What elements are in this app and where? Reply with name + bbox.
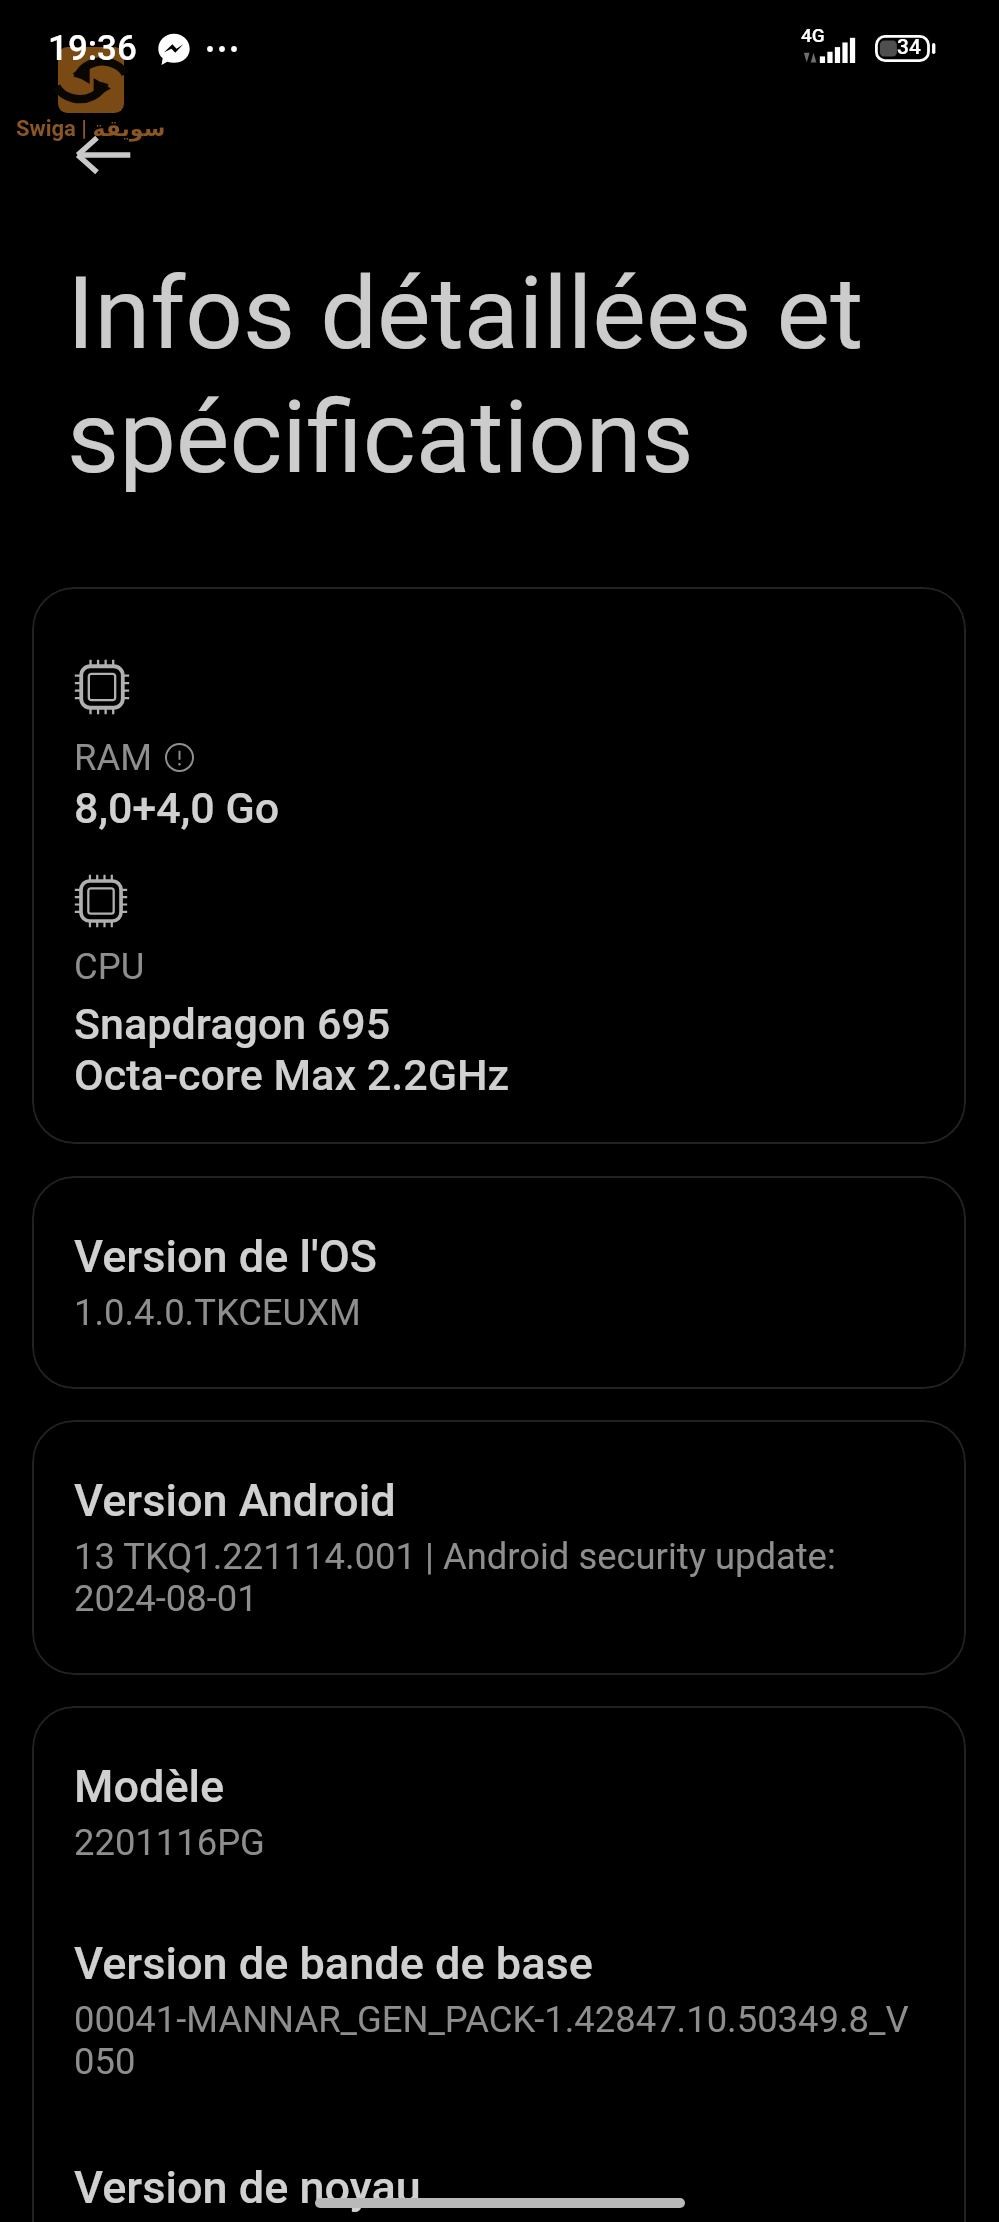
other: 4G signal strength <box>803 33 860 63</box>
staticText: CPU <box>74 945 145 988</box>
button[interactable]: Messenger notification <box>158 33 190 65</box>
staticText: Version de l'OS <box>74 1230 377 1283</box>
staticText: Version de noyau <box>74 2161 421 2214</box>
button[interactable]: Back <box>62 124 146 186</box>
staticText: 2201116PG <box>74 1821 265 1864</box>
staticText: Swiga | سويقة <box>16 116 166 142</box>
staticText: 8,0+4,0 Go <box>74 783 280 833</box>
staticText: Modèle <box>74 1760 225 1813</box>
staticText: RAM <box>74 736 152 779</box>
staticText: 00041-MANNAR_GEN_PACK-1.42847.10.50349.8… <box>74 1998 909 2083</box>
staticText: 4G <box>801 24 825 46</box>
button[interactable]: More notifications <box>207 33 237 65</box>
button[interactable]: Version Android <box>32 1420 966 1675</box>
staticText: 1.0.4.0.TKCEUXM <box>74 1291 361 1334</box>
staticText: 34 <box>897 35 921 60</box>
button[interactable]: Modèle <box>32 1706 966 2222</box>
button[interactable]: RAM <box>32 587 966 1144</box>
staticText: 13 TKQ1.221114.001 | Android security up… <box>74 1535 836 1620</box>
button[interactable]: Version de l'OS <box>32 1176 966 1389</box>
staticText: 19:36 <box>48 28 137 69</box>
staticText: Version de bande de base <box>74 1937 593 1990</box>
other: Battery 34 percent <box>875 35 936 62</box>
staticText: Version Android <box>74 1474 396 1527</box>
staticText: Snapdragon 695 Octa-core Max 2.2GHz <box>74 999 510 1101</box>
staticText: Infos détaillées et spécifications <box>67 254 956 497</box>
